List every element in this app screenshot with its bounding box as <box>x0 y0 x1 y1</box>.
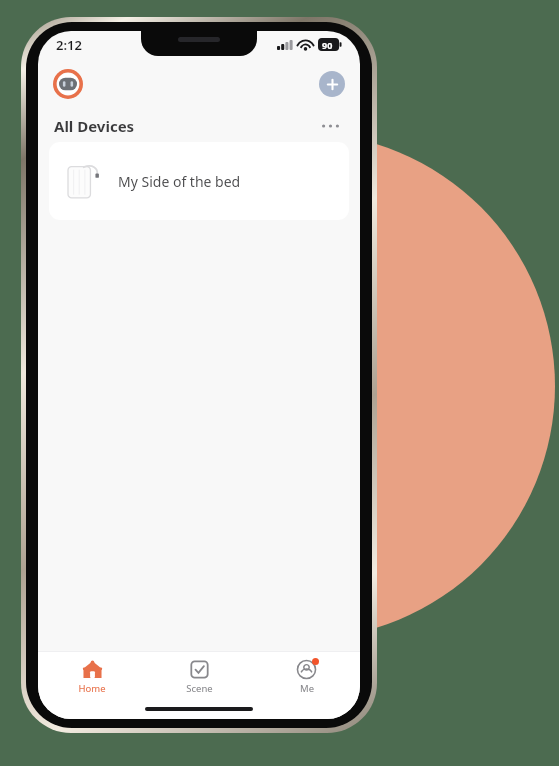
staticText: Scene <box>186 682 213 695</box>
button[interactable]: Profile <box>53 69 83 99</box>
button[interactable]: My Side of the bed <box>49 142 349 220</box>
button[interactable]: Add device <box>319 71 345 97</box>
staticText: 2:12 <box>56 36 82 54</box>
staticText: All Devices <box>54 116 135 136</box>
button[interactable]: Home <box>38 652 146 702</box>
button[interactable]: Scene <box>146 652 253 702</box>
staticText: Me <box>300 682 314 695</box>
staticText: My Side of the bed <box>118 172 241 191</box>
staticText: Home <box>78 682 106 695</box>
button[interactable]: Me <box>253 652 360 702</box>
button[interactable]: More options <box>316 113 344 139</box>
staticText: 90 <box>322 39 333 51</box>
